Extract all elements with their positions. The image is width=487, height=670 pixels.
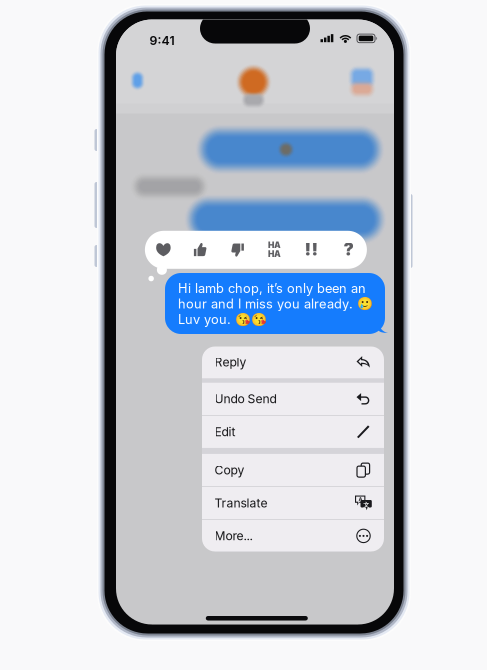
staticText: !! [304,239,318,260]
staticText: Copy [214,463,244,477]
staticText: Translate [214,496,267,510]
staticText: 9:41 [149,33,174,48]
staticText: HA [268,240,281,250]
staticText: 文 [363,501,369,509]
button[interactable]: Undo Send [202,383,384,415]
button[interactable]: Question [330,231,367,269]
staticText: Edit [214,424,235,439]
staticText: HA [268,249,281,259]
button[interactable]: Exclamation [293,231,330,269]
staticText: ? [343,239,353,260]
staticText: More... [214,529,252,543]
staticText: Hi lamb chop, it’s only been an hour and… [178,280,373,327]
button[interactable]: More... [202,520,384,552]
button[interactable]: Love [145,231,182,269]
button[interactable]: Dislike [219,231,256,269]
button[interactable]: Copy [202,454,384,486]
staticText: Undo Send [214,392,276,406]
button[interactable]: Edit [202,416,384,448]
button[interactable]: Haha [256,231,293,269]
staticText: A [358,496,362,503]
button[interactable]: Like [182,231,219,269]
button[interactable]: Translate [202,487,384,519]
staticText: Reply [214,355,246,369]
button[interactable]: Reply [202,346,384,378]
